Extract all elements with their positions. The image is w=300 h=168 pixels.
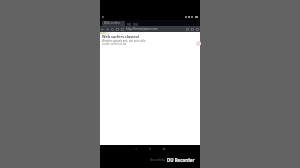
staticText: Recorded by <box>150 158 166 162</box>
button[interactable]: Home <box>148 147 152 151</box>
staticText: http://lernaviation.com <box>126 27 158 31</box>
staticText: DU Recorder <box>167 157 195 163</box>
staticText: Weatherupsade anit, ant solv collo <box>102 39 146 43</box>
button[interactable]: Recents <box>162 147 166 151</box>
button[interactable]: Menu <box>196 28 199 31</box>
button[interactable]: Home <box>116 28 119 31</box>
button[interactable]: Back <box>101 28 104 31</box>
staticText: corder acteriort ala <box>102 42 127 46</box>
staticText: Web surfers classrol <box>102 34 139 39</box>
button[interactable]: Bookmark <box>186 28 189 31</box>
button[interactable]: Site info <box>121 28 124 31</box>
staticText: Web surfers classro <box>104 21 123 26</box>
button[interactable]: Back <box>134 147 138 151</box>
button[interactable]: Forward <box>106 28 109 31</box>
button[interactable]: Tabs <box>191 28 194 31</box>
button[interactable]: Web surfers classro <box>102 21 125 26</box>
button[interactable]: Reload <box>111 28 114 31</box>
